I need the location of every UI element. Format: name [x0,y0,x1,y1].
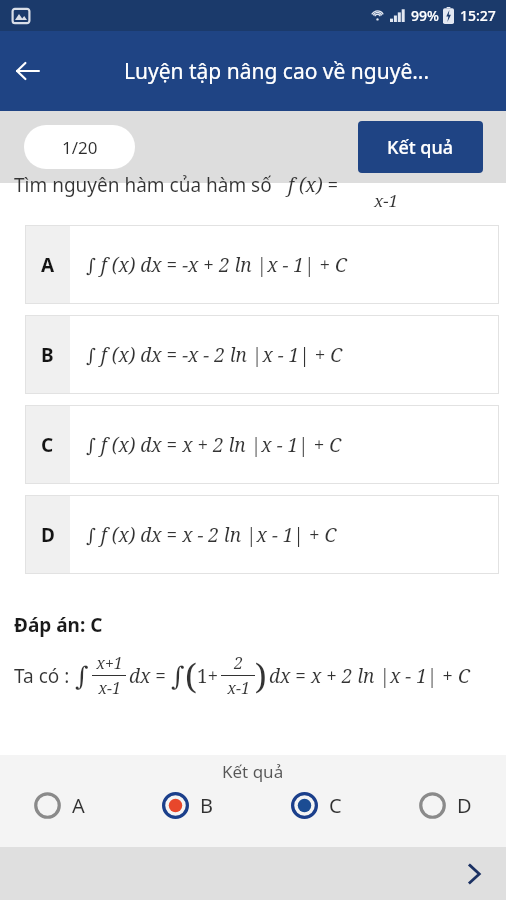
button[interactable]: Kết quả [358,121,483,173]
staticText: Đáp án: C [14,612,103,638]
staticText: A [41,252,55,278]
staticText: ) [255,653,267,699]
staticText: A [72,792,85,819]
staticText: ∫ f (x) dx = x − 2 ln |x − 1| + C [86,522,337,548]
staticText: f (x) = [288,172,339,198]
staticText: B [41,342,54,368]
staticText: 1/20 [62,136,98,159]
staticText: dx = [129,663,171,689]
button[interactable]: 1/20 [24,125,135,169]
staticText: x+1 [96,652,123,674]
staticText: x−1 [374,189,399,212]
button[interactable]: D [25,495,499,574]
button[interactable]: A [25,225,499,304]
button[interactable]: C [291,792,342,819]
staticText: C [41,432,54,458]
button[interactable]: A [34,792,85,819]
button[interactable]: B [25,315,499,394]
staticText: Kết quả [222,760,284,783]
button[interactable]: B [162,792,213,819]
staticText: x−1 [227,677,250,699]
staticText: Ta có : [14,663,75,689]
staticText: ∫ f (x) dx = −x − 2 ln |x − 1| + C [86,342,343,368]
staticText: D [457,792,472,819]
staticText: B [200,792,213,819]
staticText: Kết quả [387,135,454,160]
staticText: D [41,522,55,548]
staticText: 1+ [197,663,219,689]
staticText: 2 [234,652,243,674]
staticText: 99% [411,6,439,25]
staticText: ∫ f (x) dx = x + 2 ln |x − 1| + C [86,432,342,458]
staticText: ∫ [171,661,185,691]
staticText: Luyện tập nâng cao về nguyê... [124,57,430,86]
staticText: 15:27 [460,6,496,25]
staticText: dx = x + 2 ln |x − 1| + C [269,663,470,689]
button[interactable]: Next question [448,848,500,900]
staticText: C [329,792,342,819]
staticText: x−1 [98,677,121,699]
button[interactable]: D [419,792,472,819]
staticText: ∫ f (x) dx = −x + 2 ln |x − 1| + C [86,252,348,278]
staticText: ∫ [75,661,89,691]
staticText: Tìm nguyên hàm của hàm số [14,172,277,198]
staticText: ( [185,653,197,699]
button[interactable]: C [25,405,499,484]
button[interactable]: Back [0,43,56,99]
